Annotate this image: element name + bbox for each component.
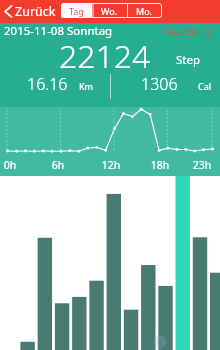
button[interactable]: Mo. — [127, 3, 162, 18]
staticText: 12h — [97, 158, 125, 172]
staticText: 0h — [0, 158, 24, 172]
button[interactable]: Daily step bar chart — [0, 176, 220, 350]
staticText: Tag — [69, 5, 84, 17]
staticText: 6h — [44, 158, 72, 172]
staticText: 18h — [146, 158, 174, 172]
button[interactable]: Wo. — [92, 3, 127, 18]
staticText: Mo. — [136, 5, 153, 17]
staticText: Zurück — [15, 3, 56, 20]
button[interactable]: Tag — [61, 3, 92, 18]
staticText: 2015-11-08 Sonntag — [4, 23, 113, 39]
staticText: 16.16 — [27, 73, 68, 95]
staticText: Step — [176, 52, 201, 68]
staticText: Km — [79, 80, 93, 92]
staticText: 23h — [188, 158, 216, 172]
staticText: 22124 — [59, 34, 151, 78]
staticText: Cal — [198, 80, 212, 92]
button[interactable]: Zurück — [0, 0, 62, 23]
staticText: 1306 — [141, 73, 178, 95]
staticText: Wo. — [101, 5, 118, 17]
button[interactable]: Beachtung — [164, 25, 213, 38]
